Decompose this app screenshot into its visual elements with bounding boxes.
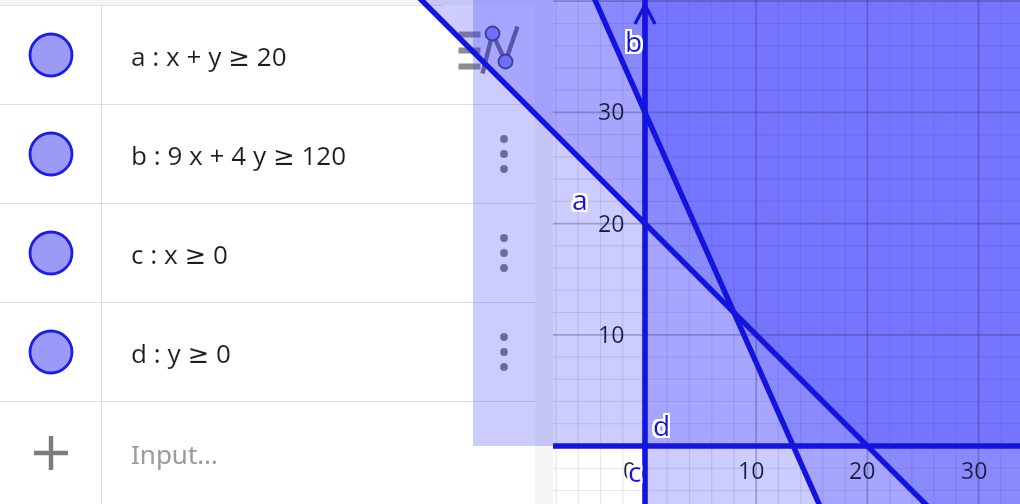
staticText: d — [653, 406, 671, 444]
staticText: 0 — [623, 454, 637, 485]
staticText: d — [653, 404, 671, 442]
staticText: c — [630, 452, 644, 490]
button[interactable]: More options for d — [473, 303, 535, 401]
staticText: b — [625, 24, 643, 62]
staticText: c — [630, 450, 644, 488]
staticText: c — [626, 454, 640, 492]
staticText: a — [572, 182, 588, 220]
staticText: c — [626, 450, 640, 488]
staticText: 10 — [598, 318, 625, 349]
staticText: 20 — [598, 207, 625, 238]
staticText: Input… — [131, 436, 218, 471]
button[interactable]: Add expression — [0, 402, 101, 504]
staticText: c — [626, 452, 640, 490]
staticText: c — [630, 454, 644, 492]
button[interactable]: Toggle visibility of b — [0, 105, 101, 203]
staticText: d — [651, 406, 669, 444]
staticText: a — [572, 180, 588, 218]
staticText: d : y ≥ 0 — [131, 335, 231, 370]
staticText: c — [628, 452, 642, 490]
staticText: d — [655, 406, 673, 444]
staticText: a — [570, 178, 586, 216]
staticText: b — [625, 20, 643, 58]
button[interactable]: Toggle visibility of d — [0, 303, 535, 401]
button[interactable]: More options for c — [473, 204, 535, 302]
button[interactable]: 30 — [553, 0, 1020, 504]
button[interactable]: Toggle visibility of b — [0, 105, 535, 203]
staticText: 30 — [961, 454, 988, 485]
staticText: b — [627, 22, 645, 60]
staticText: a — [574, 182, 590, 220]
staticText: a — [570, 180, 586, 218]
staticText: d — [655, 408, 673, 446]
button[interactable]: More options for b — [473, 105, 535, 203]
button[interactable]: Toggle visibility of a — [0, 6, 535, 104]
staticText: c — [628, 454, 642, 492]
staticText: a — [570, 182, 586, 220]
staticText: b — [623, 24, 641, 62]
button[interactable]: Toggle visibility of c — [0, 204, 535, 302]
button[interactable]: Toggle visibility of d — [0, 303, 101, 401]
staticText: a — [572, 178, 588, 216]
staticText: a : x + y ≥ 20 — [131, 38, 287, 73]
staticText: b — [623, 20, 641, 58]
button[interactable]: Add expression — [0, 402, 535, 504]
staticText: b — [627, 24, 645, 62]
staticText: 20 — [849, 454, 876, 485]
staticText: b — [623, 22, 641, 60]
staticText: a — [574, 178, 590, 216]
staticText: b : 9 x + 4 y ≥ 120 — [131, 137, 347, 172]
button[interactable]: Style bar — [442, 5, 535, 96]
staticText: d — [653, 408, 671, 446]
staticText: b — [625, 22, 643, 60]
staticText: d — [651, 404, 669, 442]
staticText: 30 — [598, 95, 625, 126]
button[interactable]: Toggle visibility of c — [0, 204, 101, 302]
staticText: d — [655, 404, 673, 442]
staticText: c — [628, 450, 642, 488]
button[interactable]: Toggle visibility of a — [0, 6, 101, 104]
staticText: b — [627, 20, 645, 58]
staticText: 10 — [738, 454, 765, 485]
staticText: c : x ≥ 0 — [131, 236, 228, 271]
staticText: a — [574, 180, 590, 218]
staticText: d — [651, 408, 669, 446]
